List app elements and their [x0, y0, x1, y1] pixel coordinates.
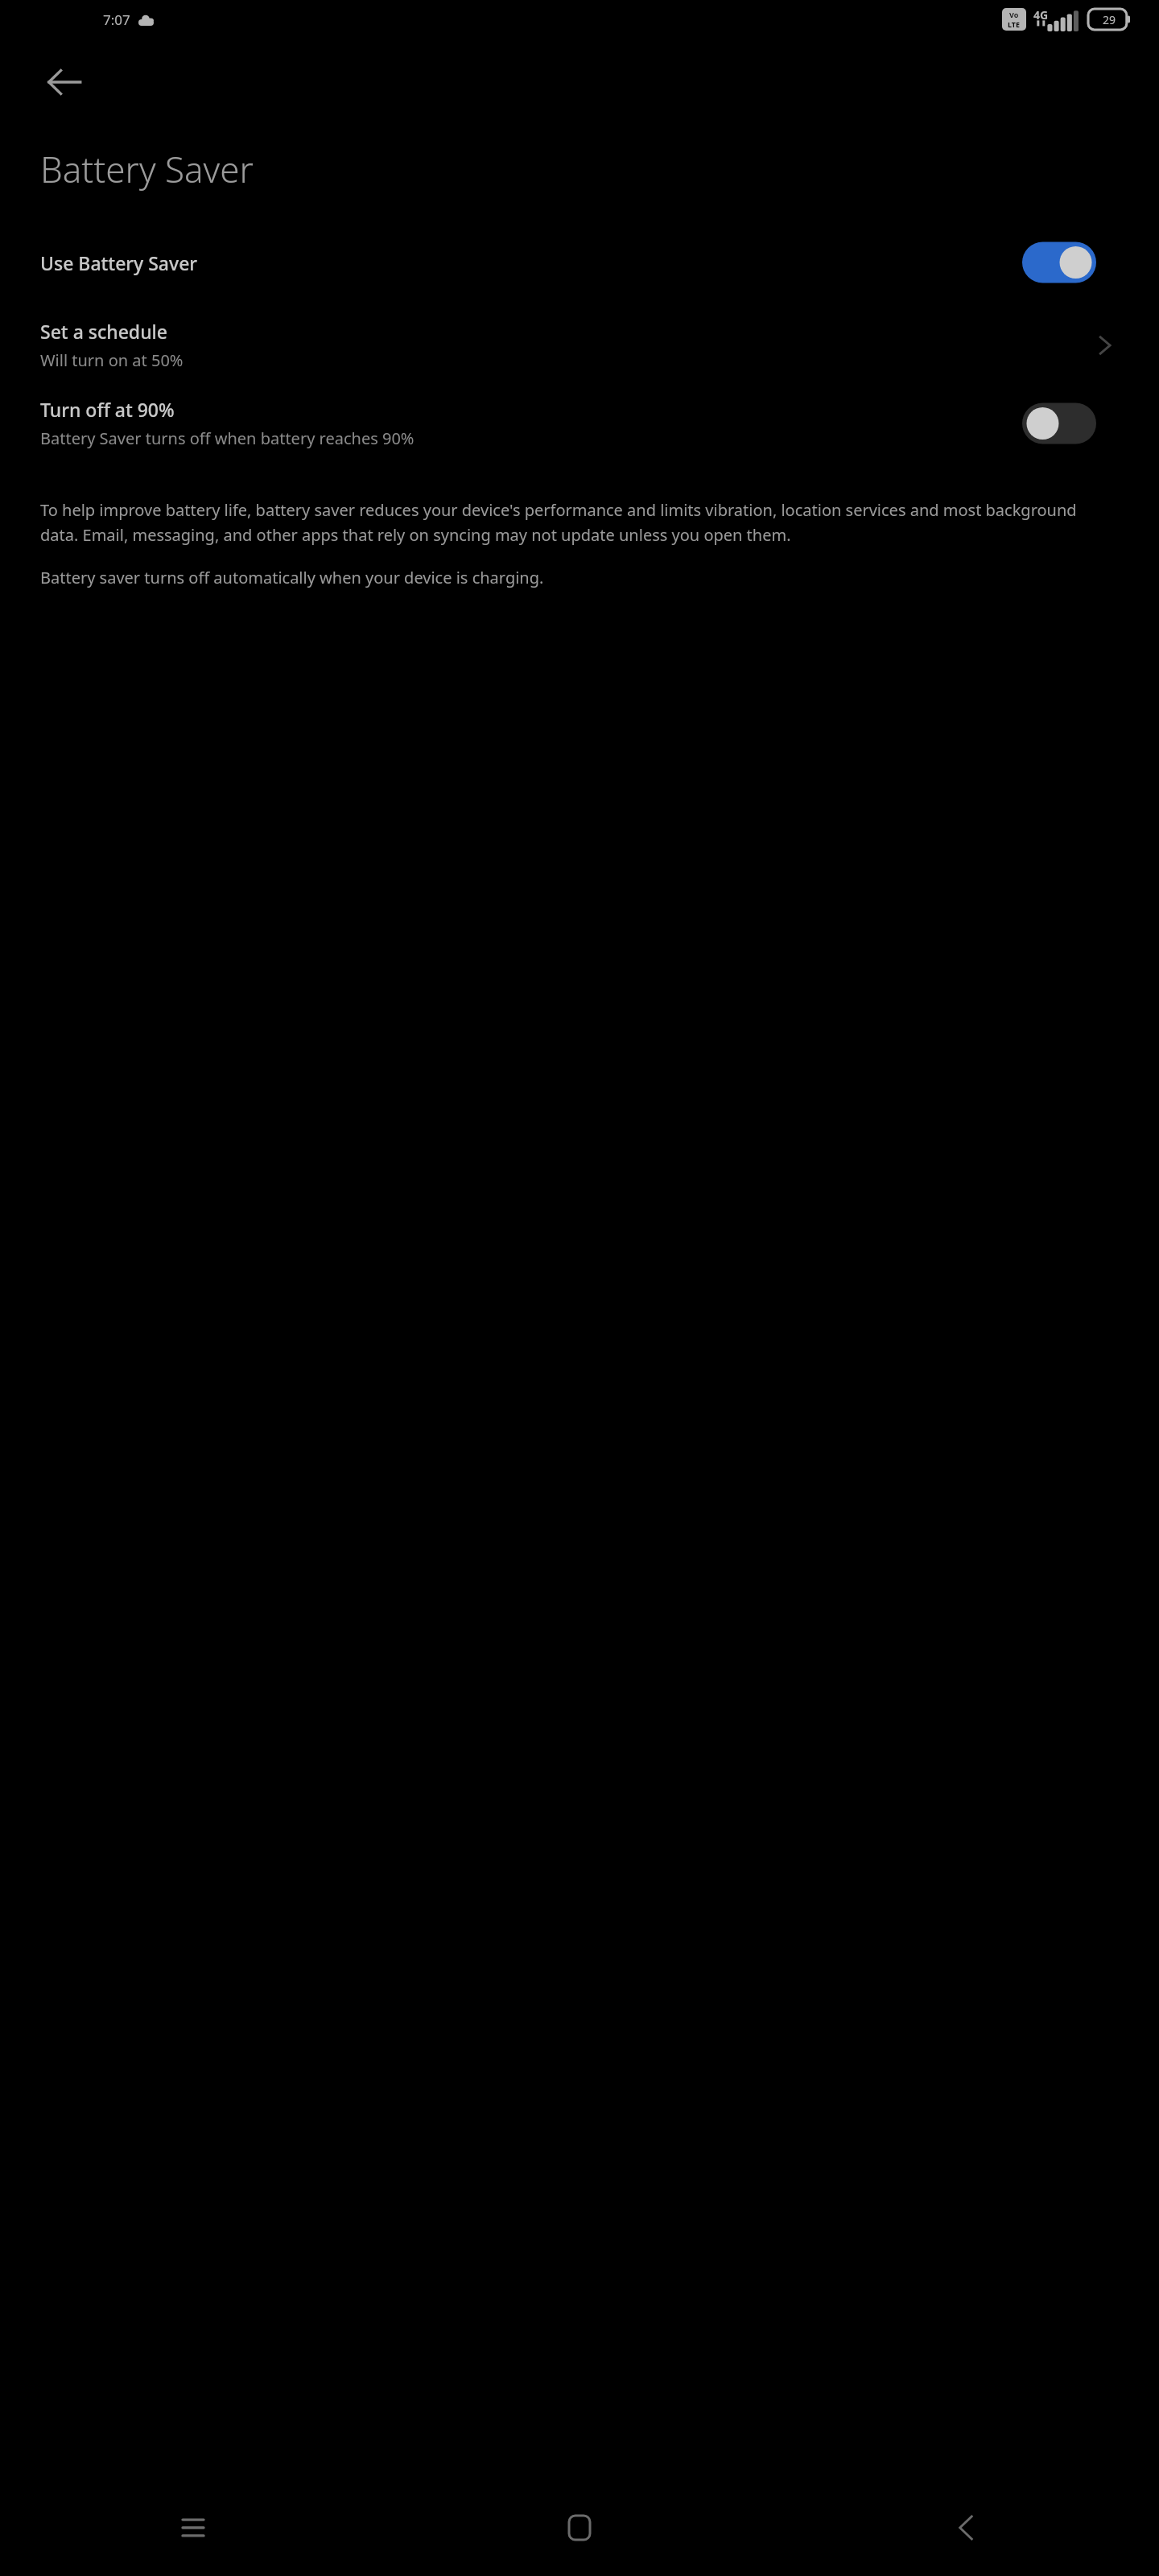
button[interactable]: Turn off at 90%	[0, 392, 1159, 454]
staticText: 4G	[1033, 7, 1049, 23]
staticText: Will turn on at 50%	[40, 349, 184, 371]
staticText: 7:07	[103, 10, 130, 29]
staticText: Battery Saver	[40, 145, 254, 193]
staticText: Vo	[1009, 10, 1019, 19]
staticText: Battery Saver turns off when battery rea…	[40, 427, 415, 449]
button[interactable]: Back	[773, 2479, 1159, 2576]
button[interactable]: Set a schedule	[0, 314, 1159, 376]
staticText: Use Battery Saver	[40, 250, 1022, 275]
button[interactable]: Home	[386, 2479, 773, 2576]
button[interactable]: Recent apps	[0, 2479, 386, 2576]
staticText: Turn off at 90%	[40, 397, 175, 422]
button[interactable]: Back	[31, 48, 98, 116]
staticText: Battery saver turns off automatically wh…	[40, 567, 544, 588]
staticText: Set a schedule	[40, 319, 167, 344]
staticText: 29	[1103, 12, 1116, 27]
button[interactable]: Use Battery Saver	[0, 235, 1159, 290]
staticText: To help improve battery life, battery sa…	[40, 499, 1119, 546]
staticText: LTE	[1008, 19, 1021, 29]
